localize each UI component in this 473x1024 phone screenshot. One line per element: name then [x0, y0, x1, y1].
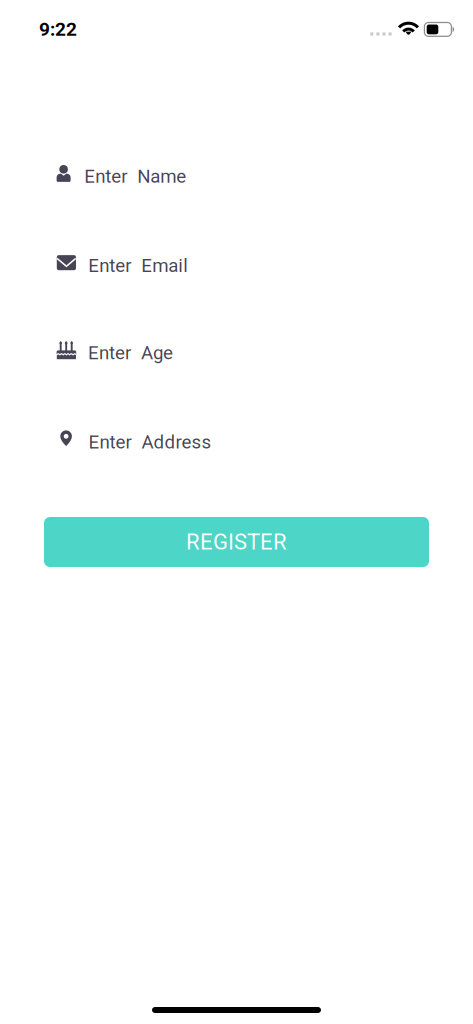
staticText: 9:22	[39, 18, 77, 40]
staticText: Enter Email	[88, 255, 188, 277]
staticText: REGISTER	[186, 529, 287, 555]
staticText: Enter Address	[88, 431, 211, 453]
button[interactable]: REGISTER	[44, 517, 429, 567]
staticText: Enter Age	[88, 342, 173, 364]
staticText: Enter Name	[84, 165, 186, 187]
button[interactable]: Enter Name	[0, 165, 473, 199]
button[interactable]: Enter Age	[0, 342, 473, 376]
button[interactable]: Enter Address	[0, 430, 473, 464]
button[interactable]: Enter Email	[0, 253, 473, 287]
